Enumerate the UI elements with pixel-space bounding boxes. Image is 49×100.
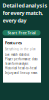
staticText: for every match, [2, 9, 43, 17]
staticText: every day [2, 17, 26, 24]
staticText: Detailed analysis [2, 2, 47, 9]
staticText: Historical head-to-head [5, 66, 37, 70]
staticText: Injury and lineup news [5, 71, 37, 75]
staticText: Player performance data [5, 57, 37, 61]
button[interactable]: Start Free Trial [2, 30, 40, 35]
staticText: Everything in the plan [5, 47, 36, 51]
staticText: Live match statistics [5, 53, 29, 56]
staticText: Team form analysis [5, 62, 28, 65]
staticText: Start Free Trial [7, 30, 35, 35]
staticText: Features [5, 40, 22, 45]
